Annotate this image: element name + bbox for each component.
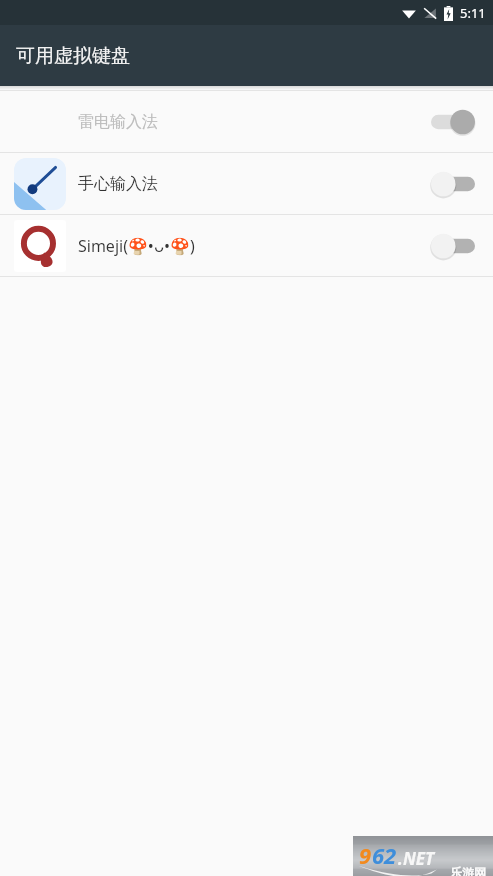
staticText: 9	[359, 840, 372, 870]
button[interactable]: 手心输入法	[0, 153, 493, 214]
staticText: 乐游网	[450, 865, 486, 876]
staticText: 62	[372, 840, 397, 870]
button[interactable]: Enable keyboard	[431, 231, 475, 261]
staticText: 手心输入法	[78, 174, 431, 194]
staticText: 5:11	[460, 4, 486, 22]
button[interactable]: Disable keyboard	[431, 107, 475, 137]
staticText: .NET	[398, 847, 435, 870]
staticText: 可用虚拟键盘	[16, 44, 130, 68]
button[interactable]: 雷电输入法	[0, 91, 493, 152]
staticText: 雷电输入法	[78, 112, 431, 132]
staticText: Simeji(🍄•ᴗ•🍄)	[78, 235, 431, 257]
button[interactable]: Enable keyboard	[431, 169, 475, 199]
button[interactable]: Simeji(🍄•ᴗ•🍄)	[0, 215, 493, 276]
